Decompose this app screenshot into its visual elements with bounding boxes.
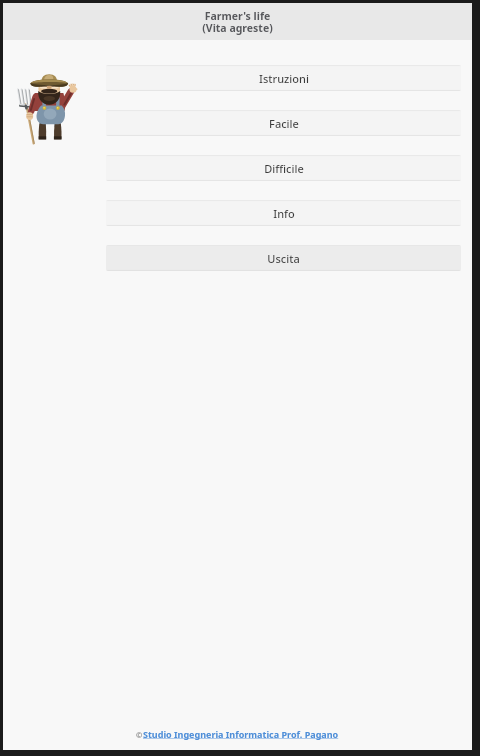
button[interactable]: Facile [106,110,461,136]
other: Farmer [17,71,81,141]
staticText: Studio Ingegneria Informatica Prof. Paga… [143,728,339,740]
button[interactable]: © [3,728,472,740]
button[interactable]: Info [106,200,461,226]
staticText: Info [273,206,295,221]
staticText: Difficile [264,161,304,176]
staticText: Istruzioni [259,71,309,86]
staticText: Farmer's life (Vita agreste) [202,9,273,35]
button[interactable]: Istruzioni [106,65,461,91]
button[interactable]: Uscita [106,245,461,271]
staticText: © [136,730,143,740]
staticText: Uscita [267,251,300,266]
button[interactable]: Difficile [106,155,461,181]
staticText: Facile [269,116,299,131]
